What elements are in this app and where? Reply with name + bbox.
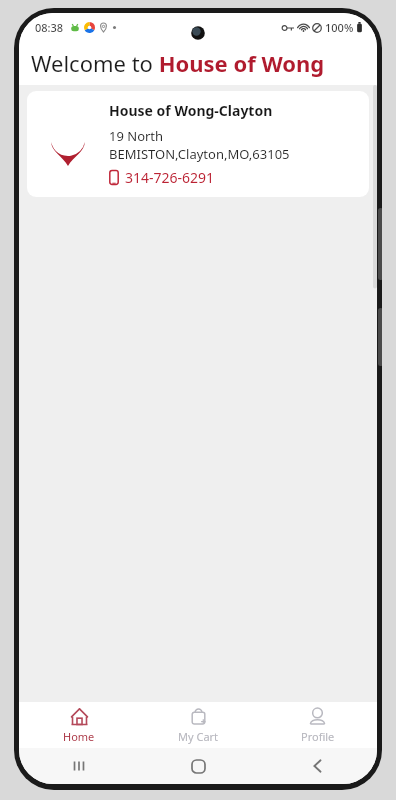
- staticText: 314-726-6291: [125, 168, 215, 187]
- staticText: 100%: [325, 20, 354, 35]
- button[interactable]: Profile: [258, 702, 377, 748]
- staticText: BEMISTON,Clayton,MO,63105: [109, 145, 290, 163]
- staticText: 19 North: [109, 127, 164, 145]
- button[interactable]: Home: [19, 702, 139, 748]
- staticText: House of Wong-Clayton: [109, 101, 273, 120]
- button[interactable]: Recent apps: [19, 748, 139, 784]
- staticText: 08:38: [35, 20, 64, 35]
- staticText: Home: [63, 729, 95, 744]
- button[interactable]: Home: [139, 748, 258, 784]
- staticText: Welcome to House of Wong: [31, 48, 325, 78]
- button[interactable]: 314-726-6291: [109, 168, 215, 187]
- staticText: My Cart: [178, 729, 219, 744]
- button[interactable]: My Cart: [139, 702, 258, 748]
- button[interactable]: Back: [258, 748, 377, 784]
- staticText: Profile: [301, 729, 335, 744]
- button[interactable]: House of Wong-Clayton: [27, 91, 369, 197]
